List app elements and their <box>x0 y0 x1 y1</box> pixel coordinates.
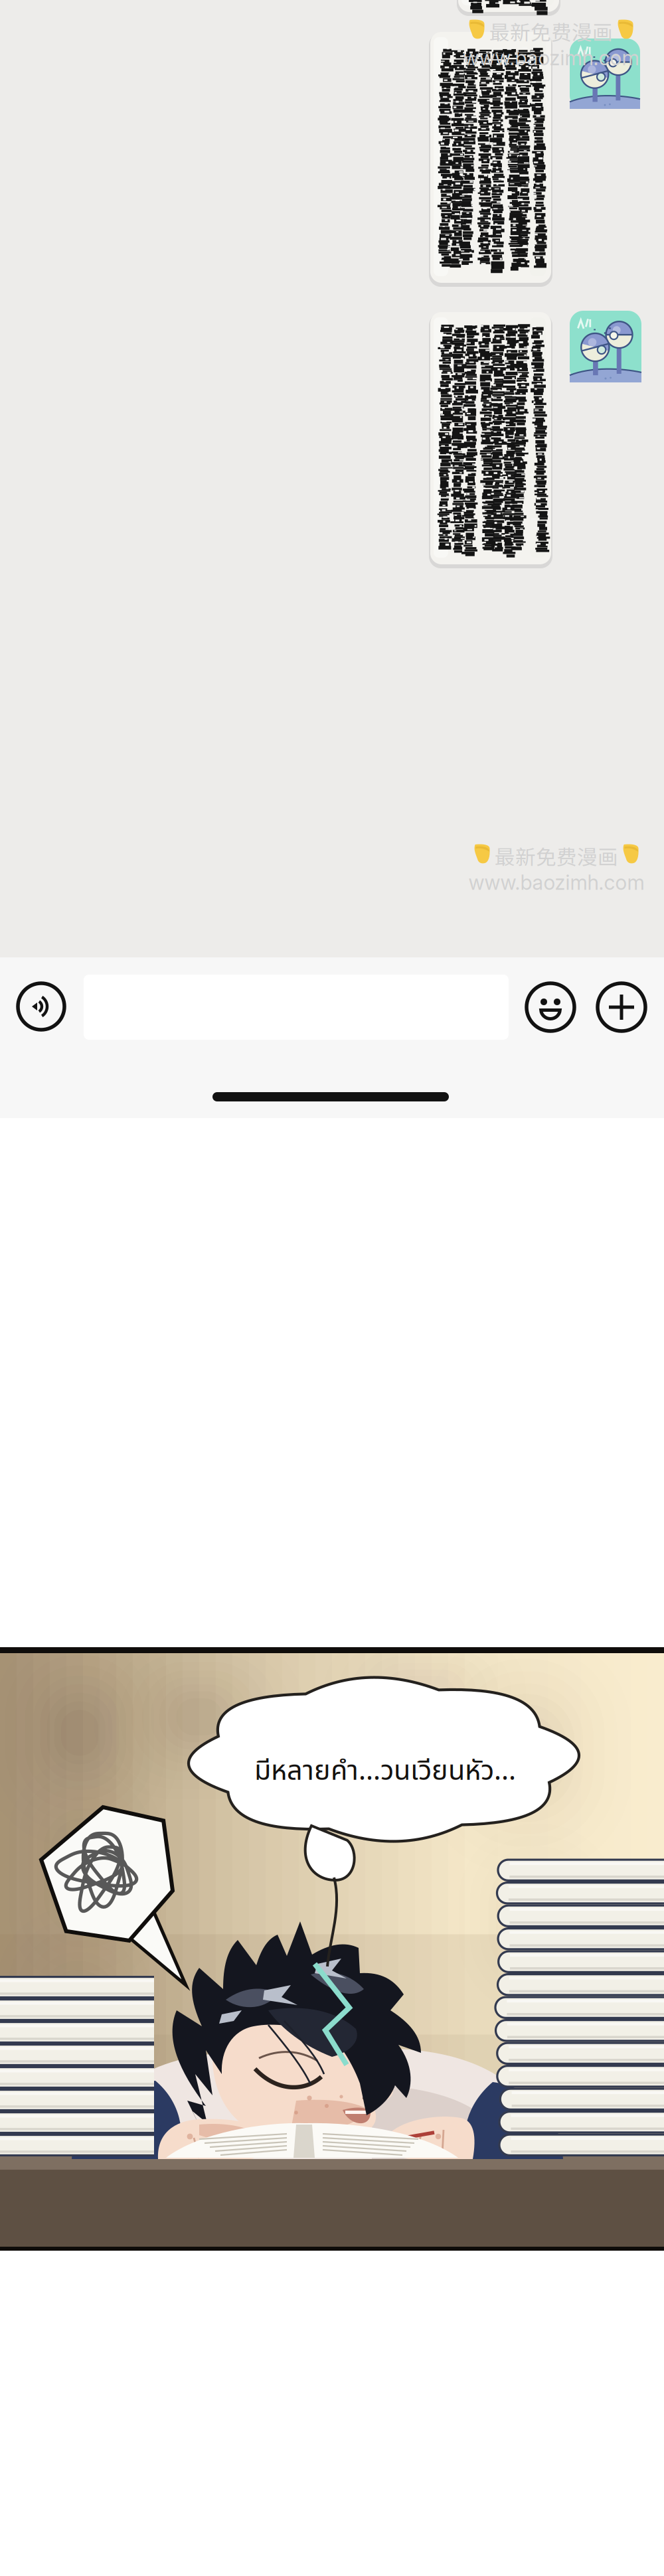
button[interactable]: Emoji <box>527 983 574 1031</box>
staticText: 最新免费漫画 <box>495 841 618 871</box>
button[interactable]: Voice message <box>18 983 64 1030</box>
staticText: www.baozimh.com <box>468 870 644 895</box>
staticText: www.baozimh.com <box>463 45 639 70</box>
staticText: 最新免费漫画 <box>489 16 613 46</box>
button[interactable]: More <box>598 983 645 1031</box>
staticText: มีหลายคำ...วนเวียนหัว... <box>254 1751 516 1792</box>
